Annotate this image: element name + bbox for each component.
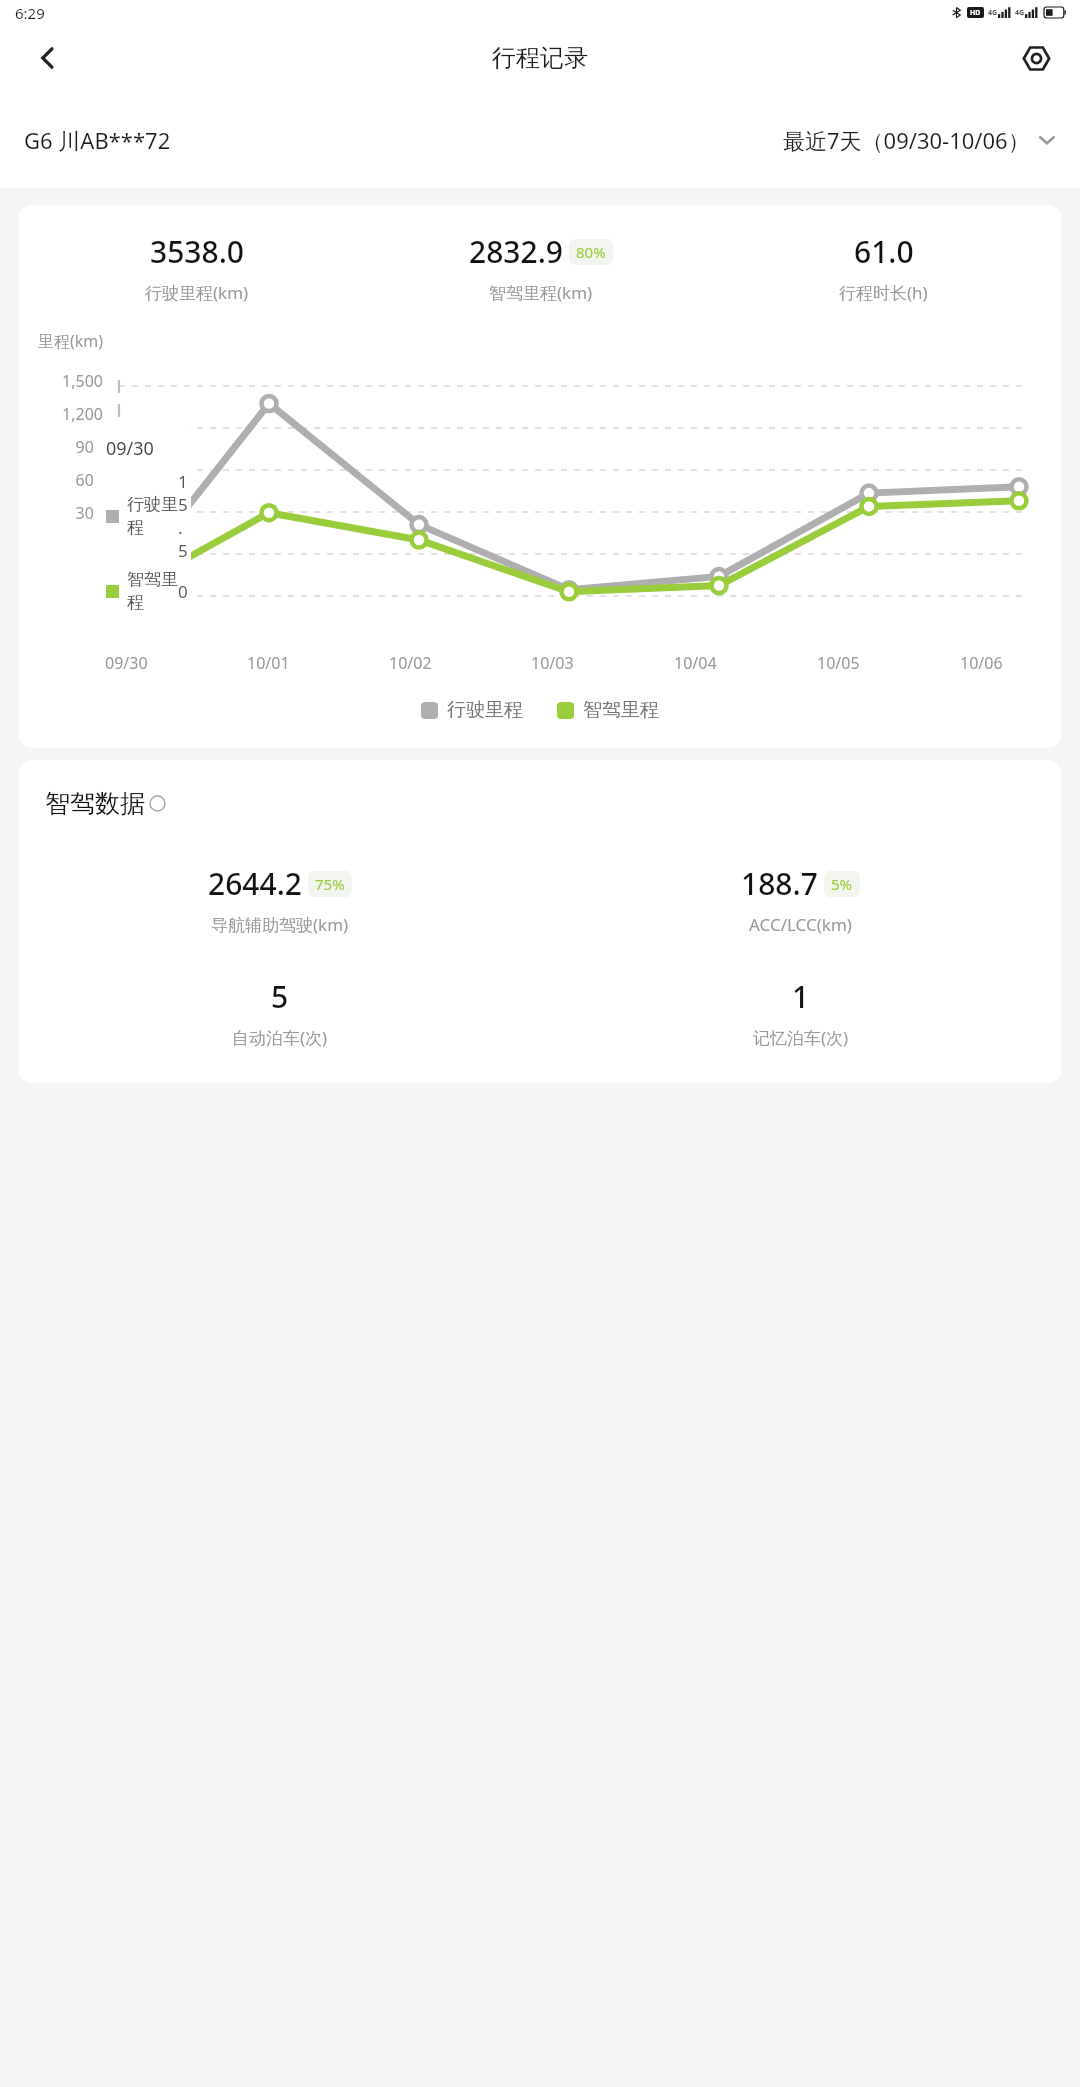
staticText: 900 (75, 436, 103, 458)
button[interactable]: 智驾里程 (557, 698, 659, 722)
button[interactable]: 行驶里程 (421, 698, 523, 722)
staticText: 最近7天（09/30-10/06） (783, 125, 1030, 155)
staticText: 行驶里程(km) (145, 281, 249, 304)
staticText: 10/06 (960, 652, 1003, 674)
staticText: 1,200 (62, 403, 103, 425)
staticText: 188.7 (741, 863, 818, 904)
staticText: 09/30 (105, 652, 148, 674)
staticText: 61.0 (854, 231, 914, 272)
staticText: 智驾里程(km) (489, 281, 593, 304)
staticText: 10/01 (247, 652, 290, 674)
staticText: 行程记录 (492, 43, 588, 73)
staticText: HD (970, 8, 981, 18)
staticText: 自动泊车(次) (232, 1026, 328, 1049)
staticText: 行驶里程 (447, 698, 523, 722)
staticText: 4G (1015, 8, 1025, 18)
staticText: 智驾里程 (127, 569, 178, 613)
staticText: 10/03 (531, 652, 574, 674)
staticText: 09/30 (106, 436, 154, 461)
button[interactable]: G6 川AB***72 (24, 125, 171, 155)
staticText: 智驾里程 (583, 698, 659, 722)
staticText: 10/04 (674, 652, 717, 674)
staticText: 里程(km) (38, 330, 104, 352)
button[interactable]: 智驾数据 (45, 788, 166, 819)
staticText: 行程时长(h) (839, 281, 928, 304)
staticText: 导航辅助驾驶(km) (211, 913, 349, 936)
staticText: 记忆泊车(次) (753, 1026, 849, 1049)
staticText: ACC/LCC(km) (749, 913, 852, 936)
staticText: 6:29 (15, 3, 45, 23)
staticText: 5% (831, 874, 853, 894)
staticText: 行驶里程 (127, 494, 178, 538)
other: Help (149, 795, 166, 812)
staticText: 80% (576, 242, 606, 262)
button[interactable]: Settings (1012, 34, 1060, 82)
staticText: 300 (75, 502, 103, 524)
staticText: 10/05 (817, 652, 860, 674)
staticText: 1 (792, 976, 810, 1017)
staticText: 3538.0 (150, 231, 244, 272)
button[interactable]: Back (24, 34, 72, 82)
button[interactable]: 最近7天（09/30-10/06） (783, 125, 1056, 155)
staticText: 1,500 (62, 370, 103, 392)
staticText: 智驾数据 (45, 788, 145, 819)
staticText: 600 (75, 469, 103, 491)
staticText: 10/02 (389, 652, 432, 674)
staticText: 5 (271, 976, 289, 1017)
staticText: 75% (315, 874, 345, 894)
staticText: 4G (988, 8, 998, 18)
staticText: 2832.9 (469, 231, 563, 272)
staticText: 2644.2 (208, 863, 302, 904)
